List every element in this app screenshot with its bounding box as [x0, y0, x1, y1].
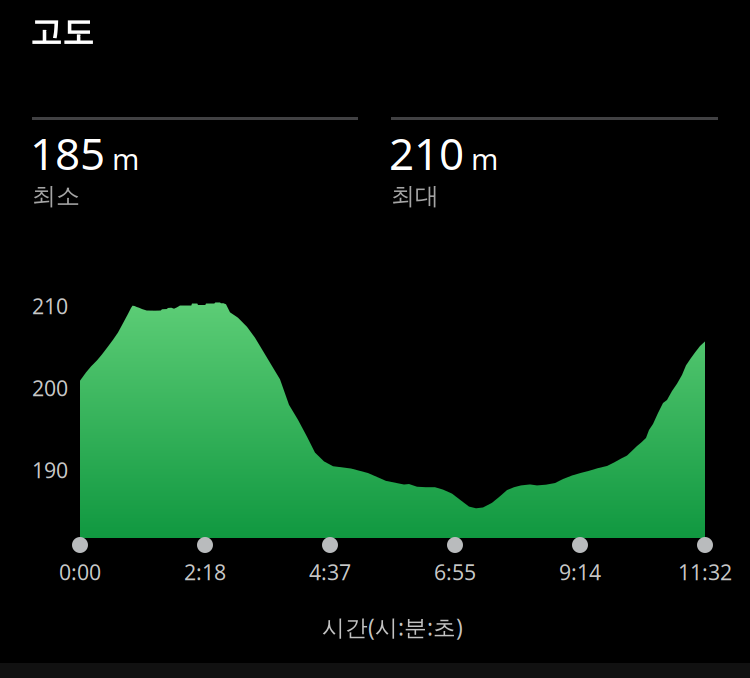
staticText: 6:55: [434, 558, 476, 586]
staticText: 4:37: [309, 558, 351, 586]
staticText: 최소: [32, 181, 80, 211]
staticText: 190: [32, 456, 68, 484]
staticText: m: [112, 139, 139, 178]
staticText: 시간(시:분:초): [322, 612, 463, 642]
staticText: m: [471, 139, 498, 178]
staticText: 185: [30, 124, 105, 182]
staticText: 2:18: [184, 558, 226, 586]
staticText: 고도: [30, 12, 94, 52]
button[interactable]: 185: [32, 0, 358, 220]
staticText: 200: [32, 374, 68, 402]
staticText: 210: [389, 124, 464, 182]
staticText: 최대: [391, 181, 439, 211]
staticText: 0:00: [59, 558, 101, 586]
staticText: 9:14: [559, 558, 601, 586]
staticText: 11:32: [678, 558, 732, 586]
button[interactable]: 210: [391, 0, 718, 220]
staticText: 210: [32, 292, 68, 320]
